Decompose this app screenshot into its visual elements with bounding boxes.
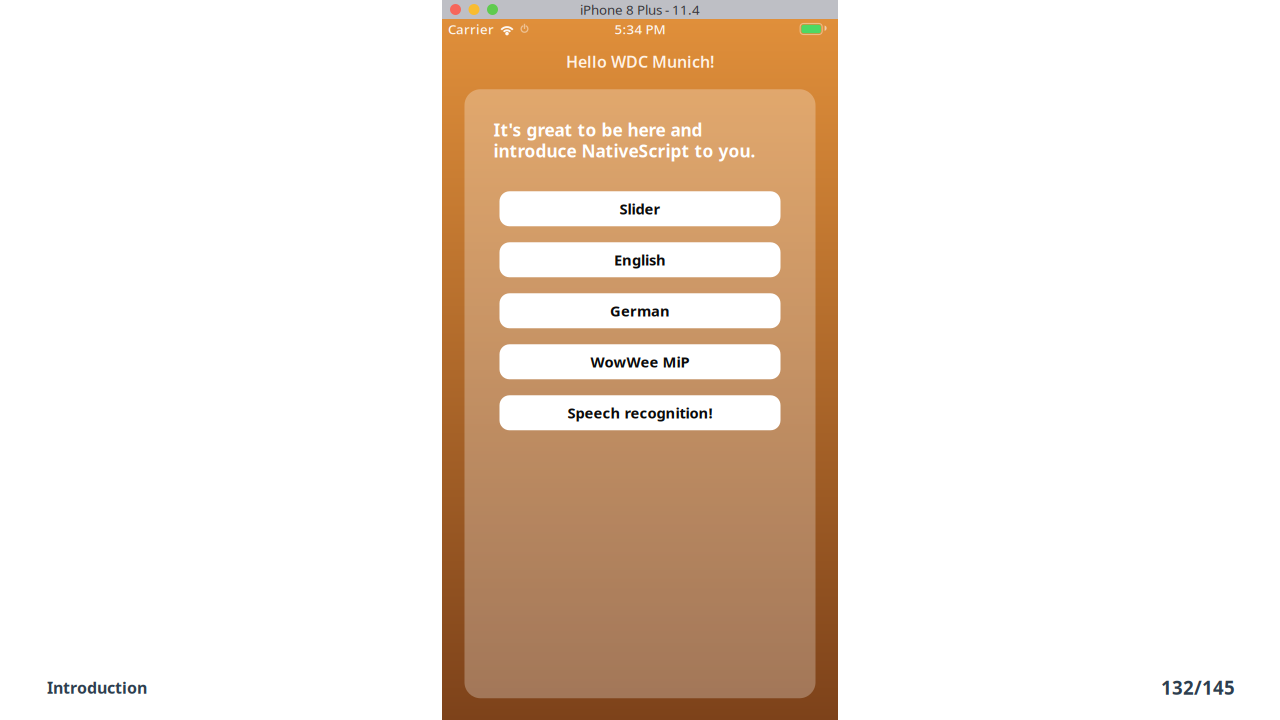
staticText: 5:34 PM <box>614 20 665 38</box>
staticText: introduce NativeScript to you. <box>493 139 755 162</box>
staticText: iPhone 8 Plus - 11.4 <box>580 1 700 18</box>
staticText: Speech recognition! <box>567 403 712 422</box>
staticText: Slider <box>619 199 660 218</box>
button[interactable]: Slider <box>499 191 780 226</box>
button[interactable]: Close <box>450 4 461 15</box>
button[interactable]: Speech recognition! <box>499 395 780 430</box>
staticText: Introduction <box>47 677 147 698</box>
staticText: German <box>610 301 670 320</box>
button[interactable]: German <box>499 293 780 328</box>
button[interactable]: Minimise <box>468 4 479 15</box>
staticText: It's great to be here and <box>493 118 702 141</box>
button[interactable]: English <box>499 242 780 277</box>
button[interactable]: WowWee MiP <box>499 344 780 379</box>
staticText: 132/145 <box>1161 675 1235 700</box>
button[interactable]: Zoom <box>487 4 498 15</box>
staticText: Hello WDC Munich! <box>566 51 714 72</box>
staticText: Carrier <box>448 20 494 38</box>
staticText: WowWee MiP <box>590 352 689 371</box>
staticText: English <box>614 250 666 269</box>
